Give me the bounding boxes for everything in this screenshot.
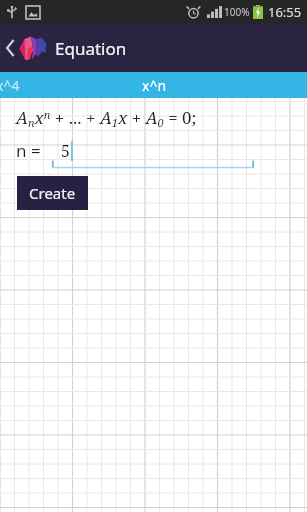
staticText: n = (16, 139, 41, 162)
staticText: Equation (55, 37, 127, 60)
staticText: Create (29, 183, 76, 203)
staticText: Anxn + ... + A1x + A0 = 0; (16, 106, 197, 130)
staticText: x^4 (0, 76, 20, 95)
staticText: 5 (61, 140, 70, 162)
staticText: 100% (224, 5, 250, 19)
button[interactable]: x^4 (0, 72, 100, 98)
button[interactable]: Back (0, 33, 133, 63)
other: Back (3, 36, 17, 60)
button[interactable]: x^n (99, 72, 209, 98)
staticText: 16:55 (268, 3, 302, 21)
button[interactable]: Create (17, 176, 88, 210)
staticText: x^n (142, 76, 167, 95)
